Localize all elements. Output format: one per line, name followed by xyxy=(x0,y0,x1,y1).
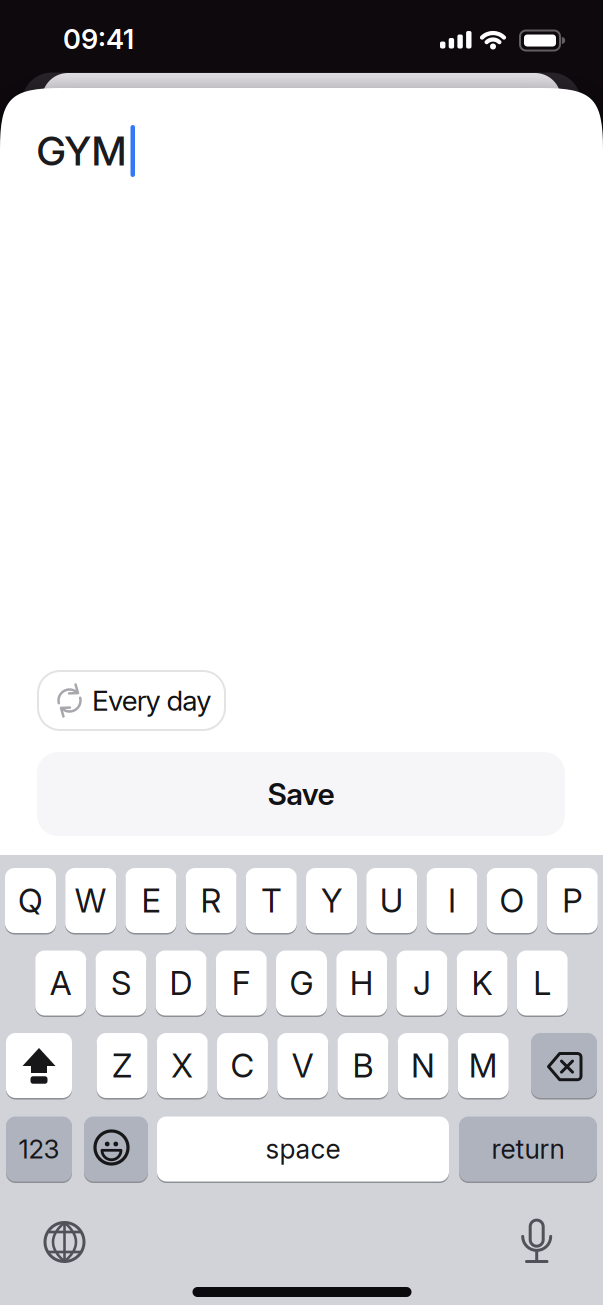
button[interactable]: Delete xyxy=(531,1033,597,1098)
button[interactable]: C xyxy=(217,1033,268,1098)
staticText: P xyxy=(562,881,582,920)
staticText: K xyxy=(472,963,493,1003)
button[interactable]: H xyxy=(336,950,387,1015)
button[interactable]: T xyxy=(246,868,297,933)
staticText: N xyxy=(411,1046,435,1085)
staticText: GYM xyxy=(36,127,126,175)
button[interactable]: U xyxy=(366,868,417,933)
button[interactable]: Y xyxy=(306,868,357,933)
button[interactable]: X xyxy=(157,1033,208,1098)
staticText: Save xyxy=(267,776,334,812)
staticText: F xyxy=(232,963,251,1003)
button[interactable]: L xyxy=(517,950,568,1015)
button[interactable]: A xyxy=(35,950,86,1015)
staticText: T xyxy=(261,881,281,920)
button[interactable]: O xyxy=(487,868,538,933)
staticText: G xyxy=(289,963,313,1003)
staticText: X xyxy=(171,1046,193,1085)
button[interactable]: Save xyxy=(37,752,565,836)
button[interactable]: return xyxy=(459,1116,597,1181)
staticText: I xyxy=(448,881,456,920)
button[interactable]: M xyxy=(458,1033,509,1098)
staticText: O xyxy=(500,881,525,920)
button[interactable]: P xyxy=(547,868,598,933)
staticText: S xyxy=(111,963,131,1003)
button[interactable]: space xyxy=(157,1116,449,1181)
staticText: B xyxy=(352,1046,373,1085)
button[interactable]: K xyxy=(457,950,508,1015)
staticText: Q xyxy=(18,881,43,920)
staticText: H xyxy=(350,963,374,1003)
button[interactable]: B xyxy=(337,1033,388,1098)
button[interactable]: Z xyxy=(97,1033,148,1098)
button[interactable]: I xyxy=(426,868,477,933)
staticText: space xyxy=(265,1133,340,1165)
button[interactable]: N xyxy=(398,1033,449,1098)
staticText: D xyxy=(170,963,193,1003)
button[interactable]: S xyxy=(95,950,146,1015)
staticText: C xyxy=(230,1046,254,1085)
button[interactable]: Q xyxy=(5,868,56,933)
staticText: V xyxy=(292,1046,314,1085)
button[interactable]: W xyxy=(65,868,116,933)
button[interactable]: Emoji xyxy=(84,1116,148,1181)
button[interactable]: Every day xyxy=(38,671,225,730)
button[interactable]: E xyxy=(125,868,176,933)
staticText: M xyxy=(469,1046,498,1085)
staticText: L xyxy=(533,963,551,1003)
staticText: U xyxy=(380,881,404,920)
button[interactable]: F xyxy=(216,950,267,1015)
staticText: W xyxy=(75,881,107,920)
button[interactable]: 123 xyxy=(6,1116,72,1181)
staticText: E xyxy=(141,881,160,920)
button[interactable]: Dictation xyxy=(507,1210,567,1270)
button[interactable]: Next keyboard xyxy=(34,1212,94,1272)
button[interactable]: Shift xyxy=(6,1033,72,1098)
button[interactable]: J xyxy=(396,950,447,1015)
button[interactable]: G xyxy=(276,950,327,1015)
staticText: return xyxy=(491,1133,564,1165)
staticText: Every day xyxy=(92,684,211,717)
staticText: 123 xyxy=(18,1133,59,1165)
staticText: Y xyxy=(321,881,342,920)
staticText: J xyxy=(413,963,431,1003)
staticText: R xyxy=(201,881,222,920)
staticText: Z xyxy=(112,1046,132,1085)
staticText: A xyxy=(50,963,72,1003)
button[interactable]: V xyxy=(277,1033,328,1098)
button[interactable]: R xyxy=(186,868,237,933)
button[interactable]: D xyxy=(156,950,207,1015)
staticText: 09:41 xyxy=(63,22,134,56)
